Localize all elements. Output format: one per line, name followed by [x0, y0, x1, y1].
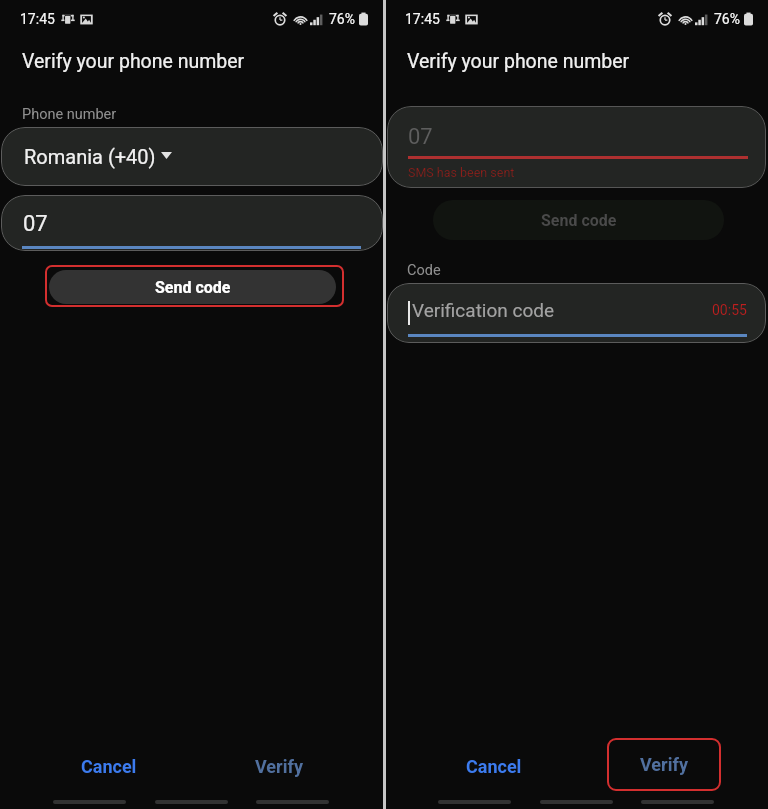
- staticText: Code: [407, 262, 441, 279]
- button[interactable]: Verification code: [387, 283, 766, 343]
- staticText: 07: [23, 211, 48, 237]
- staticText: 00:55: [712, 302, 747, 318]
- staticText: 76%: [714, 11, 740, 27]
- staticText: Verify: [255, 756, 303, 777]
- button[interactable]: 07: [1, 195, 383, 251]
- staticText: SMS has been sent: [408, 165, 515, 180]
- button[interactable]: Romania (+40): [1, 127, 383, 186]
- staticText: 07: [408, 124, 433, 150]
- button[interactable]: Cancel: [68, 748, 150, 784]
- staticText: Verification code: [412, 299, 555, 321]
- staticText: Verify: [640, 754, 688, 775]
- button[interactable]: Send code: [433, 200, 724, 240]
- staticText: Send code: [155, 278, 231, 297]
- staticText: Cancel: [466, 756, 522, 777]
- button[interactable]: Verify: [238, 748, 320, 784]
- staticText: Send code: [541, 211, 617, 230]
- staticText: 76%: [329, 11, 355, 27]
- staticText: 17:45: [20, 11, 55, 27]
- button[interactable]: Cancel: [453, 748, 535, 784]
- button[interactable]: Send code: [49, 270, 336, 304]
- staticText: Verify your phone number: [22, 50, 245, 73]
- staticText: Romania (+40): [24, 145, 156, 168]
- button[interactable]: Verify: [607, 738, 721, 791]
- staticText: 17:45: [405, 11, 440, 27]
- staticText: Cancel: [81, 756, 137, 777]
- staticText: Verify your phone number: [407, 50, 630, 73]
- staticText: Phone number: [22, 106, 117, 123]
- button[interactable]: 07: [387, 106, 766, 188]
